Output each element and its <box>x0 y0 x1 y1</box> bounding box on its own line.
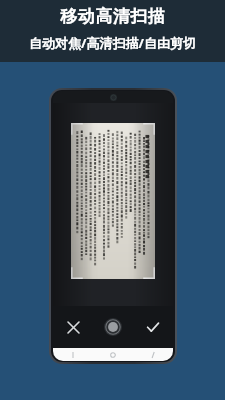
staticText: 移动高清扫描 <box>60 6 165 27</box>
button[interactable]: Cancel <box>53 306 93 348</box>
button[interactable]: home <box>93 348 133 361</box>
button[interactable]: Rotate <box>93 306 133 348</box>
button[interactable]: recents <box>133 348 173 361</box>
button[interactable]: back <box>53 348 93 361</box>
button[interactable]: Confirm <box>133 306 173 348</box>
staticText: 自动对焦/高清扫描/自由剪切 <box>29 34 196 52</box>
